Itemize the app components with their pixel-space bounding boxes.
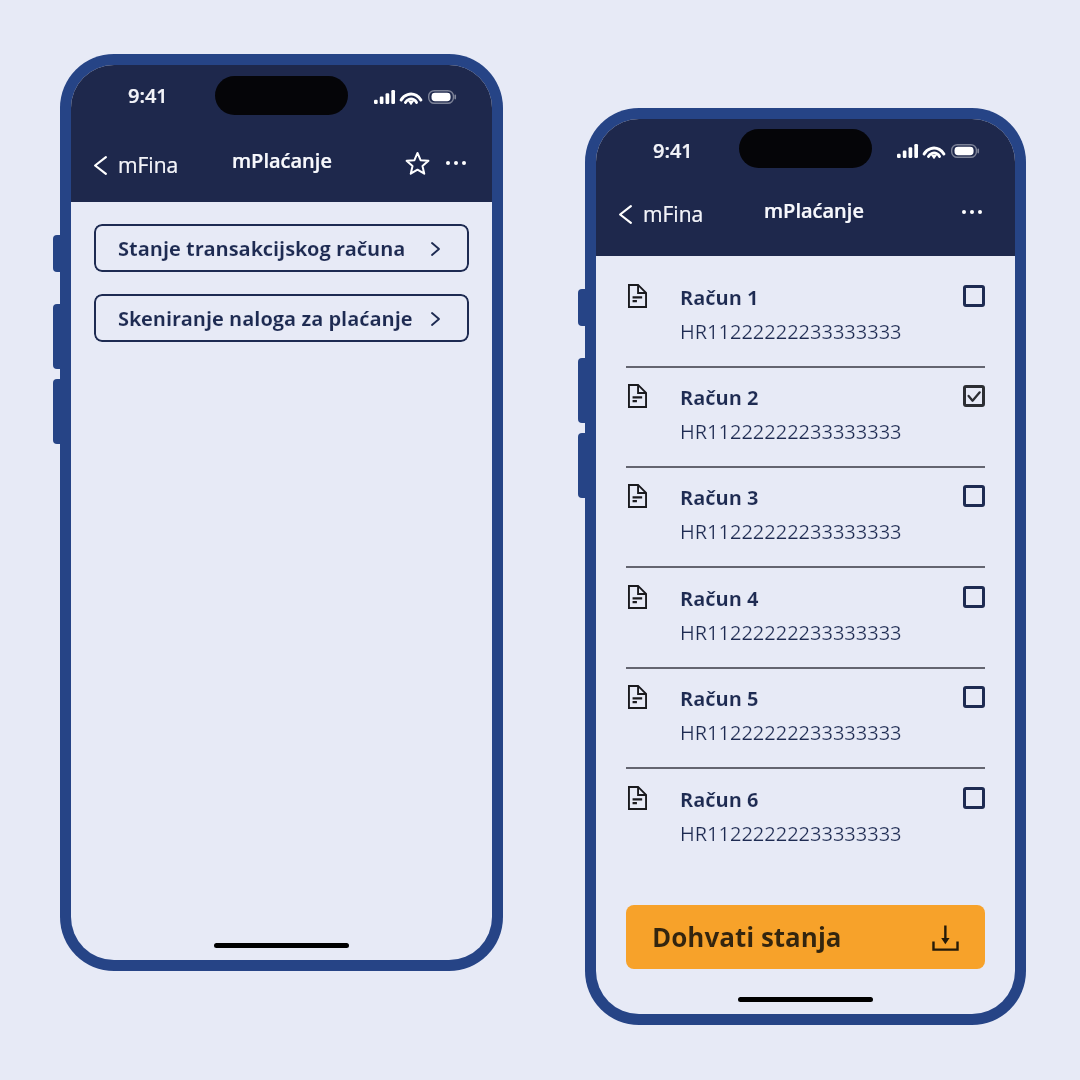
staticText: mPlaćanje bbox=[232, 147, 332, 174]
staticText: 9:41 bbox=[128, 82, 168, 109]
button[interactable]: Račun 4 bbox=[596, 569, 1015, 669]
staticText: mPlaćanje bbox=[764, 197, 864, 224]
button[interactable]: mFina bbox=[613, 194, 710, 235]
staticText: Stanje transakcijskog računa bbox=[118, 235, 406, 262]
staticText: Dohvati stanja bbox=[652, 919, 842, 954]
staticText: HR11222222233333333 bbox=[680, 719, 902, 746]
staticText: mFina bbox=[643, 200, 704, 229]
button[interactable]: Dohvati stanja bbox=[626, 905, 985, 969]
button[interactable]: Račun 2 bbox=[596, 368, 1015, 468]
staticText: Skeniranje naloga za plaćanje bbox=[118, 305, 413, 332]
staticText: HR11222222233333333 bbox=[680, 318, 902, 345]
staticText: 9:41 bbox=[653, 137, 693, 164]
button[interactable]: Favorite bbox=[399, 145, 435, 181]
staticText: Račun 4 bbox=[680, 585, 759, 612]
staticText: HR11222222233333333 bbox=[680, 518, 902, 545]
staticText: Račun 3 bbox=[680, 484, 759, 511]
staticText: Račun 6 bbox=[680, 786, 759, 813]
staticText: Račun 2 bbox=[680, 384, 759, 411]
button[interactable]: Račun 1 bbox=[596, 268, 1015, 368]
button[interactable]: Stanje transakcijskog računa bbox=[94, 224, 469, 272]
staticText: HR11222222233333333 bbox=[680, 820, 902, 847]
button[interactable]: Račun 6 bbox=[596, 770, 1015, 870]
staticText: mFina bbox=[118, 151, 179, 180]
staticText: HR11222222233333333 bbox=[680, 418, 902, 445]
staticText: HR11222222233333333 bbox=[680, 619, 902, 646]
button[interactable]: More options bbox=[438, 145, 474, 181]
button[interactable]: Skeniranje naloga za plaćanje bbox=[94, 294, 469, 342]
staticText: Račun 1 bbox=[680, 284, 759, 311]
button[interactable]: Račun 5 bbox=[596, 669, 1015, 769]
button[interactable]: Račun 3 bbox=[596, 468, 1015, 568]
button[interactable]: mFina bbox=[88, 145, 185, 186]
staticText: Račun 5 bbox=[680, 685, 759, 712]
button[interactable]: More options bbox=[954, 194, 990, 230]
